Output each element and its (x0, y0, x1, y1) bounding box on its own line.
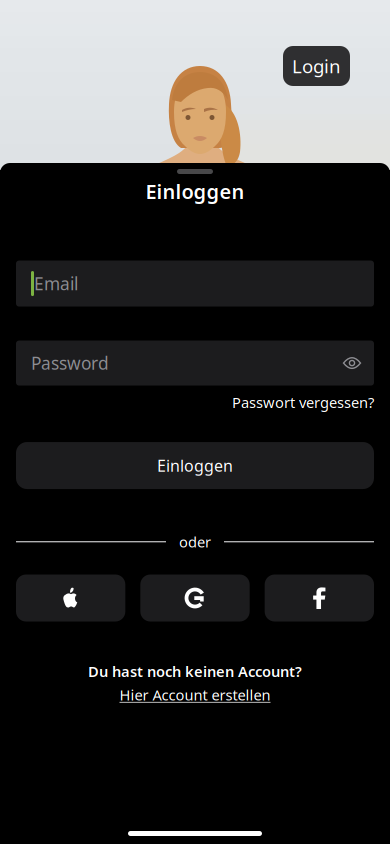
staticText: Email (34, 272, 78, 295)
button[interactable]: Einloggen (16, 442, 374, 489)
button[interactable]: Sign in with Facebook (265, 574, 374, 621)
staticText: Passwort vergessen? (232, 393, 374, 412)
button[interactable]: Hier Account erstellen (119, 685, 270, 704)
button[interactable]: Passwort vergessen? (232, 393, 374, 412)
staticText: Einloggen (145, 178, 244, 205)
button[interactable]: Sign in with Google (140, 574, 250, 621)
staticText: Password (31, 352, 109, 375)
staticText: Du hast noch keinen Account? (88, 661, 302, 681)
staticText: Einloggen (157, 455, 233, 476)
button[interactable]: Sign in with Apple (16, 574, 125, 621)
staticText: Login (292, 54, 341, 78)
button[interactable]: Show password (343, 356, 361, 370)
staticText: oder (179, 532, 211, 551)
button[interactable]: Login (283, 46, 350, 86)
staticText: Hier Account erstellen (119, 685, 270, 704)
